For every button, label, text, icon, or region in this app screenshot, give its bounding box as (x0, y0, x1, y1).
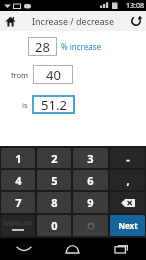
staticText: 4 (15, 173, 22, 188)
button[interactable]: Home (48, 238, 97, 260)
button[interactable]: 40 (33, 65, 73, 84)
staticText: Next (118, 220, 138, 231)
button[interactable]: 6 (73, 170, 108, 190)
button[interactable]: 1 (1, 148, 35, 168)
staticText: 7 (15, 195, 22, 210)
button[interactable]: Backspace (110, 192, 145, 213)
button[interactable]: , (110, 170, 145, 190)
staticText: 40 (46, 66, 61, 84)
button[interactable]: 2 (37, 148, 71, 168)
staticText: 1 (15, 151, 22, 166)
staticText: 51.2 (41, 96, 67, 114)
staticText: English (US) (4, 220, 32, 227)
button[interactable]: Home (0, 11, 20, 31)
button[interactable]: 4 (1, 170, 35, 190)
button[interactable]: 9 (73, 192, 108, 213)
staticText: from (11, 70, 29, 80)
button[interactable]: 3 (73, 148, 108, 168)
staticText: % increase (61, 41, 102, 52)
button[interactable]: 28 (28, 37, 57, 56)
staticText: Increase / decrease (32, 15, 114, 27)
button[interactable]: 5 (37, 170, 71, 190)
staticText: 5 (51, 173, 58, 188)
button[interactable]: Emoji (73, 215, 108, 236)
other: Change language (1, 215, 35, 236)
staticText: 2 (51, 151, 58, 166)
staticText: , (126, 173, 130, 188)
staticText: 6 (87, 173, 94, 188)
staticText: 3 (87, 151, 94, 166)
staticText: 13:08 (126, 1, 144, 11)
button[interactable]: 0 (37, 215, 71, 236)
button[interactable]: 8 (37, 192, 71, 213)
staticText: 0 (51, 218, 58, 233)
staticText: - (126, 151, 130, 166)
button[interactable]: 7 (1, 192, 35, 213)
staticText: 9 (87, 195, 94, 210)
staticText: 28 (35, 38, 50, 56)
button[interactable]: Recent apps (97, 238, 146, 260)
staticText: is (22, 100, 28, 110)
button[interactable]: 51.2 (32, 95, 75, 114)
staticText: 8 (51, 195, 58, 210)
button[interactable]: - (110, 148, 145, 168)
button[interactable]: Back (0, 238, 48, 260)
button[interactable]: Refresh (126, 11, 146, 31)
button[interactable]: Next (110, 215, 145, 236)
button[interactable]: Change language (1, 215, 35, 236)
